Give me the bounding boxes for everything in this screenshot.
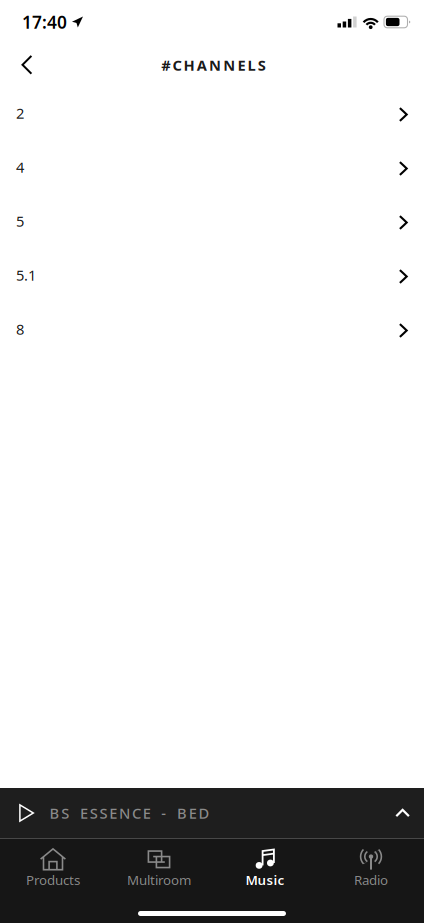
staticText: L [248, 55, 256, 75]
staticText: N [223, 55, 235, 75]
staticText: Multiroom [127, 871, 191, 889]
staticText: S [61, 803, 69, 823]
button[interactable]: Music [212, 848, 318, 889]
staticText: C [172, 55, 181, 75]
staticText: D [198, 803, 209, 823]
staticText: N [119, 803, 130, 823]
staticText: Radio [354, 871, 388, 889]
staticText: E [143, 803, 151, 823]
staticText: Products [26, 871, 80, 889]
button[interactable]: Products [0, 848, 106, 889]
button[interactable]: Multiroom [106, 848, 212, 889]
staticText: 5 [16, 211, 24, 231]
staticText: 8 [16, 319, 24, 339]
staticText: S [90, 803, 98, 823]
button[interactable]: Back [5, 44, 49, 86]
staticText: Music [245, 871, 284, 889]
staticText: S [258, 55, 266, 75]
staticText: H [184, 55, 195, 75]
staticText: C [132, 803, 141, 823]
button[interactable]: 5.1 [0, 248, 424, 302]
staticText: B [49, 803, 59, 823]
staticText: 17:40 [22, 10, 67, 33]
button[interactable]: 4 [0, 140, 424, 194]
staticText: A [197, 55, 207, 75]
staticText: # [161, 55, 170, 75]
staticText: B [177, 803, 187, 823]
staticText: 5.1 [16, 265, 36, 285]
staticText: E [80, 803, 88, 823]
button[interactable]: 5 [0, 194, 424, 248]
staticText: 4 [16, 157, 24, 177]
button[interactable]: Radio [318, 848, 424, 889]
button[interactable]: 2 [0, 86, 424, 140]
button[interactable]: 8 [0, 302, 424, 356]
staticText: E [189, 803, 197, 823]
staticText: E [237, 55, 245, 75]
staticText: N [209, 55, 221, 75]
staticText: 2 [16, 103, 24, 123]
staticText: E [109, 803, 117, 823]
staticText: S [99, 803, 107, 823]
button[interactable]: B [0, 788, 424, 838]
staticText: - [161, 803, 166, 823]
